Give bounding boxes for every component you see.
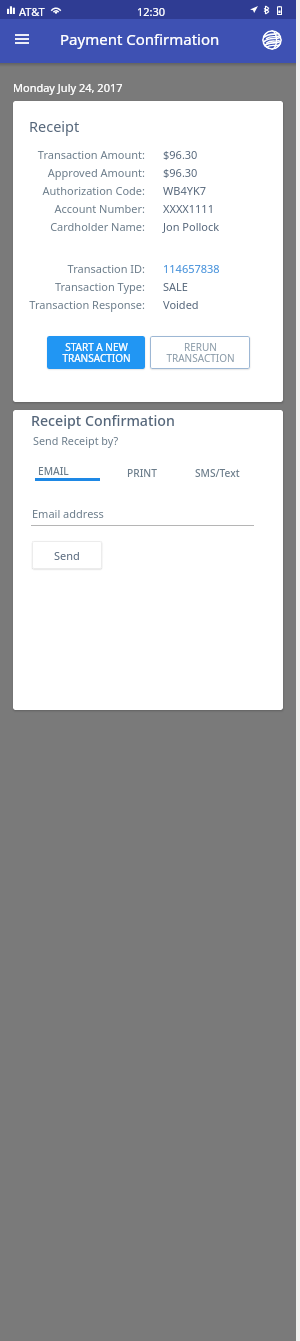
staticText: Transaction Response: xyxy=(13,297,145,312)
staticText: Transaction Amount: xyxy=(13,147,145,162)
staticText: Receipt xyxy=(29,116,80,136)
staticText: Payment Confirmation xyxy=(60,29,220,49)
staticText: Transaction ID: xyxy=(13,261,145,276)
staticText: Email address xyxy=(32,506,104,521)
staticText: Approved Amount: xyxy=(13,165,145,180)
staticText: Send Receipt by? xyxy=(33,433,119,448)
staticText: Authorization Code: xyxy=(13,183,145,198)
staticText: 12:30 xyxy=(137,4,166,19)
staticText: AT&T xyxy=(19,4,45,19)
button[interactable]: EMAIL xyxy=(35,460,100,484)
button[interactable]: Open navigation drawer xyxy=(9,26,35,52)
staticText: Receipt Confirmation xyxy=(31,411,175,430)
staticText: Send xyxy=(54,548,80,563)
staticText: $96.30 xyxy=(163,165,198,180)
staticText: Cardholder Name: xyxy=(13,219,145,234)
button[interactable]: Send xyxy=(32,541,102,569)
staticText: $96.30 xyxy=(163,147,198,162)
staticText: 114657838 xyxy=(163,261,220,276)
button[interactable]: Company logo xyxy=(262,30,282,50)
staticText: Voided xyxy=(163,297,199,312)
staticText: Transaction Type: xyxy=(13,279,145,294)
staticText: SMS/Text xyxy=(195,466,240,480)
button[interactable]: START A NEW TRANSACTION xyxy=(47,336,145,369)
staticText: WB4YK7 xyxy=(163,183,206,198)
staticText: RERUN TRANSACTION xyxy=(166,340,235,365)
button[interactable]: PRINT xyxy=(100,460,184,484)
staticText: START A NEW TRANSACTION xyxy=(62,340,131,365)
button[interactable]: RERUN TRANSACTION xyxy=(150,336,250,369)
staticText: EMAIL xyxy=(38,464,69,478)
staticText: Account Number: xyxy=(13,201,145,216)
staticText: XXXX1111 xyxy=(163,201,214,216)
staticText: Monday July 24, 2017 xyxy=(13,80,123,95)
button[interactable]: SMS/Text xyxy=(184,460,251,484)
staticText: SALE xyxy=(163,279,188,294)
staticText: PRINT xyxy=(127,466,157,480)
staticText: Jon Pollock xyxy=(163,219,220,234)
